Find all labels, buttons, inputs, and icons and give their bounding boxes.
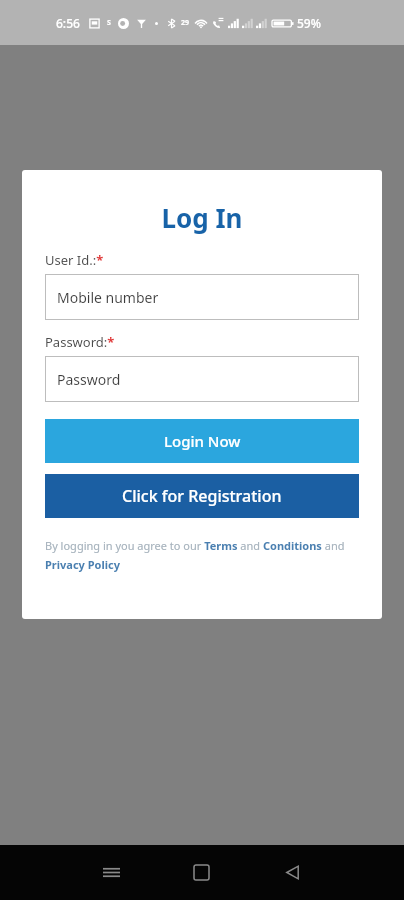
staticText: User Id.:* — [45, 251, 104, 269]
staticText: Login Now — [164, 431, 241, 451]
button[interactable]: Mobile number — [45, 274, 359, 320]
button[interactable]: Back — [247, 845, 338, 900]
button[interactable]: Home — [156, 845, 247, 900]
staticText: S — [107, 18, 111, 28]
staticText: Mobile number — [57, 288, 159, 307]
staticText: Log In — [45, 200, 359, 235]
staticText: 29 — [181, 18, 190, 28]
button[interactable]: Login Now — [45, 419, 359, 463]
button[interactable]: By logging in you agree to our Terms and… — [45, 538, 359, 572]
button[interactable]: Click for Registration — [45, 474, 359, 518]
staticText: Click for Registration — [122, 485, 282, 507]
staticText: Password — [57, 370, 121, 389]
button[interactable]: Recent apps — [66, 845, 156, 900]
button[interactable]: Password — [45, 356, 359, 402]
staticText: By logging in you agree to our Terms and… — [45, 538, 359, 572]
staticText: Password:* — [45, 333, 115, 351]
staticText: 6:56 — [56, 15, 80, 31]
staticText: 59% — [297, 15, 321, 31]
